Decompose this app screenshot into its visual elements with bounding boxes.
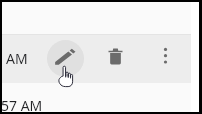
staticText: AM	[6, 49, 28, 68]
staticText: 57 AM	[1, 96, 43, 114]
button[interactable]: Delete	[97, 40, 134, 77]
button[interactable]: Edit	[47, 40, 84, 77]
button[interactable]: 57 AM	[2, 83, 191, 112]
button[interactable]: AM	[2, 35, 191, 83]
button[interactable]: More options	[147, 40, 184, 77]
